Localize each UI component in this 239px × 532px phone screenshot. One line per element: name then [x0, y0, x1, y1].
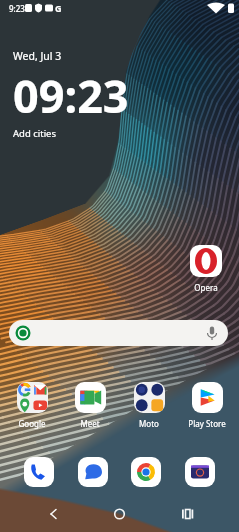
staticText: 09:23 [13, 65, 129, 126]
button[interactable]: Opera [190, 245, 222, 293]
staticText: Meet [64, 418, 116, 429]
button[interactable]: Google [6, 382, 58, 429]
staticText: Moto [123, 418, 175, 429]
button[interactable] [9, 320, 228, 346]
staticText: Opera [190, 282, 222, 293]
button[interactable]: Messages [78, 457, 108, 487]
staticText: Wed, Jul 3 [13, 49, 62, 63]
staticText: 9:23 [9, 3, 25, 14]
button[interactable]: Wed, Jul 3 [13, 49, 129, 140]
staticText: Play Store [181, 418, 233, 429]
staticText: G [55, 2, 62, 14]
button[interactable]: Phone [24, 457, 54, 487]
button[interactable]: Camera [185, 457, 215, 487]
button[interactable]: Meet [64, 382, 116, 429]
staticText: Google [6, 418, 58, 429]
button[interactable]: Play Store [181, 382, 233, 429]
button[interactable]: Chrome [131, 457, 161, 487]
button[interactable]: Moto [123, 382, 175, 429]
staticText: Add cities [13, 127, 57, 140]
